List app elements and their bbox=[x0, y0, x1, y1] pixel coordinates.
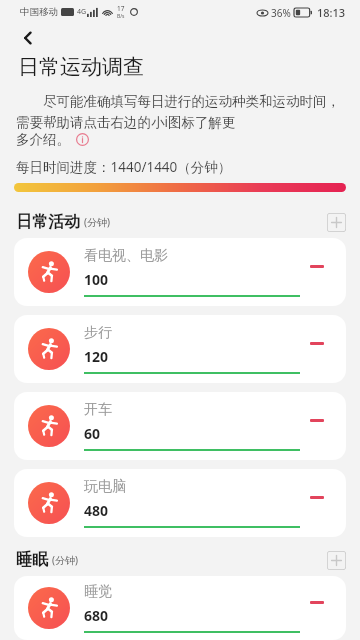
button[interactable]: Remove 步行 bbox=[300, 326, 334, 360]
button[interactable]: Remove 开车 bbox=[300, 403, 334, 437]
staticText: 60 bbox=[84, 424, 101, 443]
button[interactable]: Remove 玩电脑 bbox=[300, 480, 334, 514]
button[interactable]: 睡觉 bbox=[14, 576, 346, 640]
staticText: (分钟) bbox=[84, 215, 110, 229]
button[interactable]: 步行 bbox=[14, 315, 346, 383]
staticText: 18:13 bbox=[317, 5, 346, 20]
button[interactable]: Information bbox=[75, 132, 90, 147]
staticText: 中国移动 bbox=[20, 6, 58, 18]
staticText: B/s bbox=[117, 13, 125, 20]
button[interactable]: 开车 bbox=[14, 392, 346, 460]
staticText: 100 bbox=[84, 270, 109, 289]
button[interactable]: Back bbox=[12, 24, 44, 52]
staticText: 4G bbox=[77, 7, 87, 17]
staticText: 多介绍。 bbox=[16, 131, 70, 148]
staticText: 17 bbox=[117, 4, 125, 13]
staticText: 36% bbox=[271, 6, 291, 20]
staticText: 玩电脑 bbox=[84, 478, 126, 496]
staticText: 步行 bbox=[84, 324, 112, 342]
staticText: 睡觉 bbox=[84, 583, 112, 601]
button[interactable]: 玩电脑 bbox=[14, 469, 346, 537]
staticText: 睡眠 bbox=[16, 550, 48, 570]
staticText: 680 bbox=[84, 606, 109, 625]
staticText: 开车 bbox=[84, 401, 112, 419]
button[interactable]: 看电视、电影 bbox=[14, 238, 346, 306]
staticText: 每日时间进度：1440/1440（分钟） bbox=[16, 158, 232, 176]
staticText: (分钟) bbox=[52, 553, 78, 567]
button[interactable]: Add item bbox=[327, 551, 346, 570]
staticText: 尽可能准确填写每日进行的运动种类和运动时间，需要帮助请点击右边的小i图标了解更 bbox=[16, 92, 344, 131]
button[interactable]: Add item bbox=[327, 213, 346, 232]
staticText: 看电视、电影 bbox=[84, 247, 168, 265]
staticText: 480 bbox=[84, 501, 109, 520]
button[interactable]: Remove 睡觉 bbox=[300, 585, 334, 619]
staticText: 日常活动 bbox=[16, 212, 80, 232]
staticText: 日常运动调查 bbox=[18, 54, 144, 80]
staticText: 120 bbox=[84, 347, 109, 366]
button[interactable]: Remove 看电视、电影 bbox=[300, 249, 334, 283]
